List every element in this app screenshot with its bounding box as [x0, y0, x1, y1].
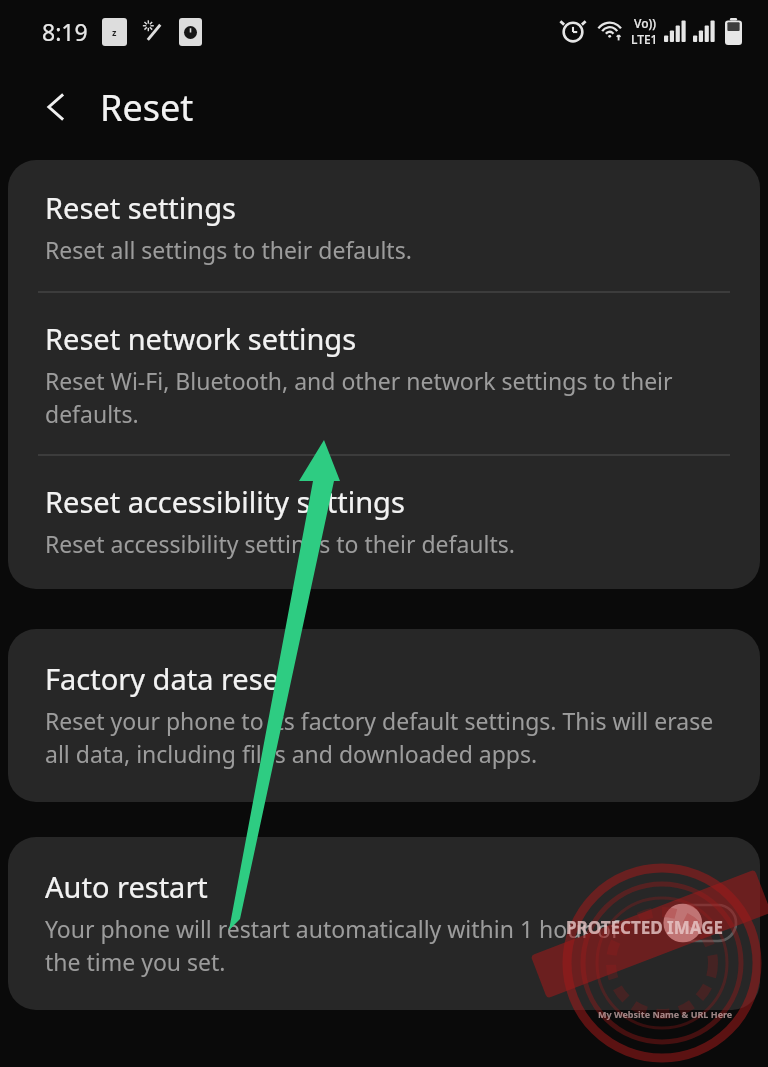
- staticText: Reset all settings to their defaults.: [45, 234, 412, 265]
- button[interactable]: Reset accessibility settings: [8, 456, 760, 589]
- button[interactable]: Auto restart toggle: [660, 901, 736, 945]
- staticText: My Website Name & URL Here: [598, 1008, 733, 1020]
- staticText: Factory data reset: [45, 659, 290, 698]
- staticText: Reset: [100, 83, 194, 132]
- staticText: Vo)): [634, 15, 656, 31]
- staticText: PROTECTED IMAGE: [566, 916, 723, 939]
- staticText: Reset Wi-Fi, Bluetooth, and other networ…: [45, 365, 736, 430]
- staticText: Your phone will restart automatically wi…: [45, 913, 646, 978]
- staticText: 8:19: [42, 16, 88, 47]
- staticText: Reset your phone to its factory default …: [45, 705, 736, 770]
- staticText: Reset accessibility settings: [45, 482, 405, 521]
- staticText: Auto restart: [45, 867, 208, 906]
- staticText: LTE1: [631, 31, 658, 47]
- button[interactable]: Factory data reset: [8, 629, 760, 802]
- button[interactable]: Back: [26, 76, 88, 138]
- button[interactable]: Auto restart: [8, 837, 760, 1010]
- button[interactable]: Reset settings: [8, 160, 760, 291]
- staticText: Reset network settings: [45, 319, 357, 358]
- staticText: Reset accessibility settings to their de…: [45, 528, 515, 559]
- staticText: Reset settings: [45, 188, 236, 227]
- button[interactable]: Reset network settings: [8, 293, 760, 454]
- staticText: z: [112, 26, 117, 38]
